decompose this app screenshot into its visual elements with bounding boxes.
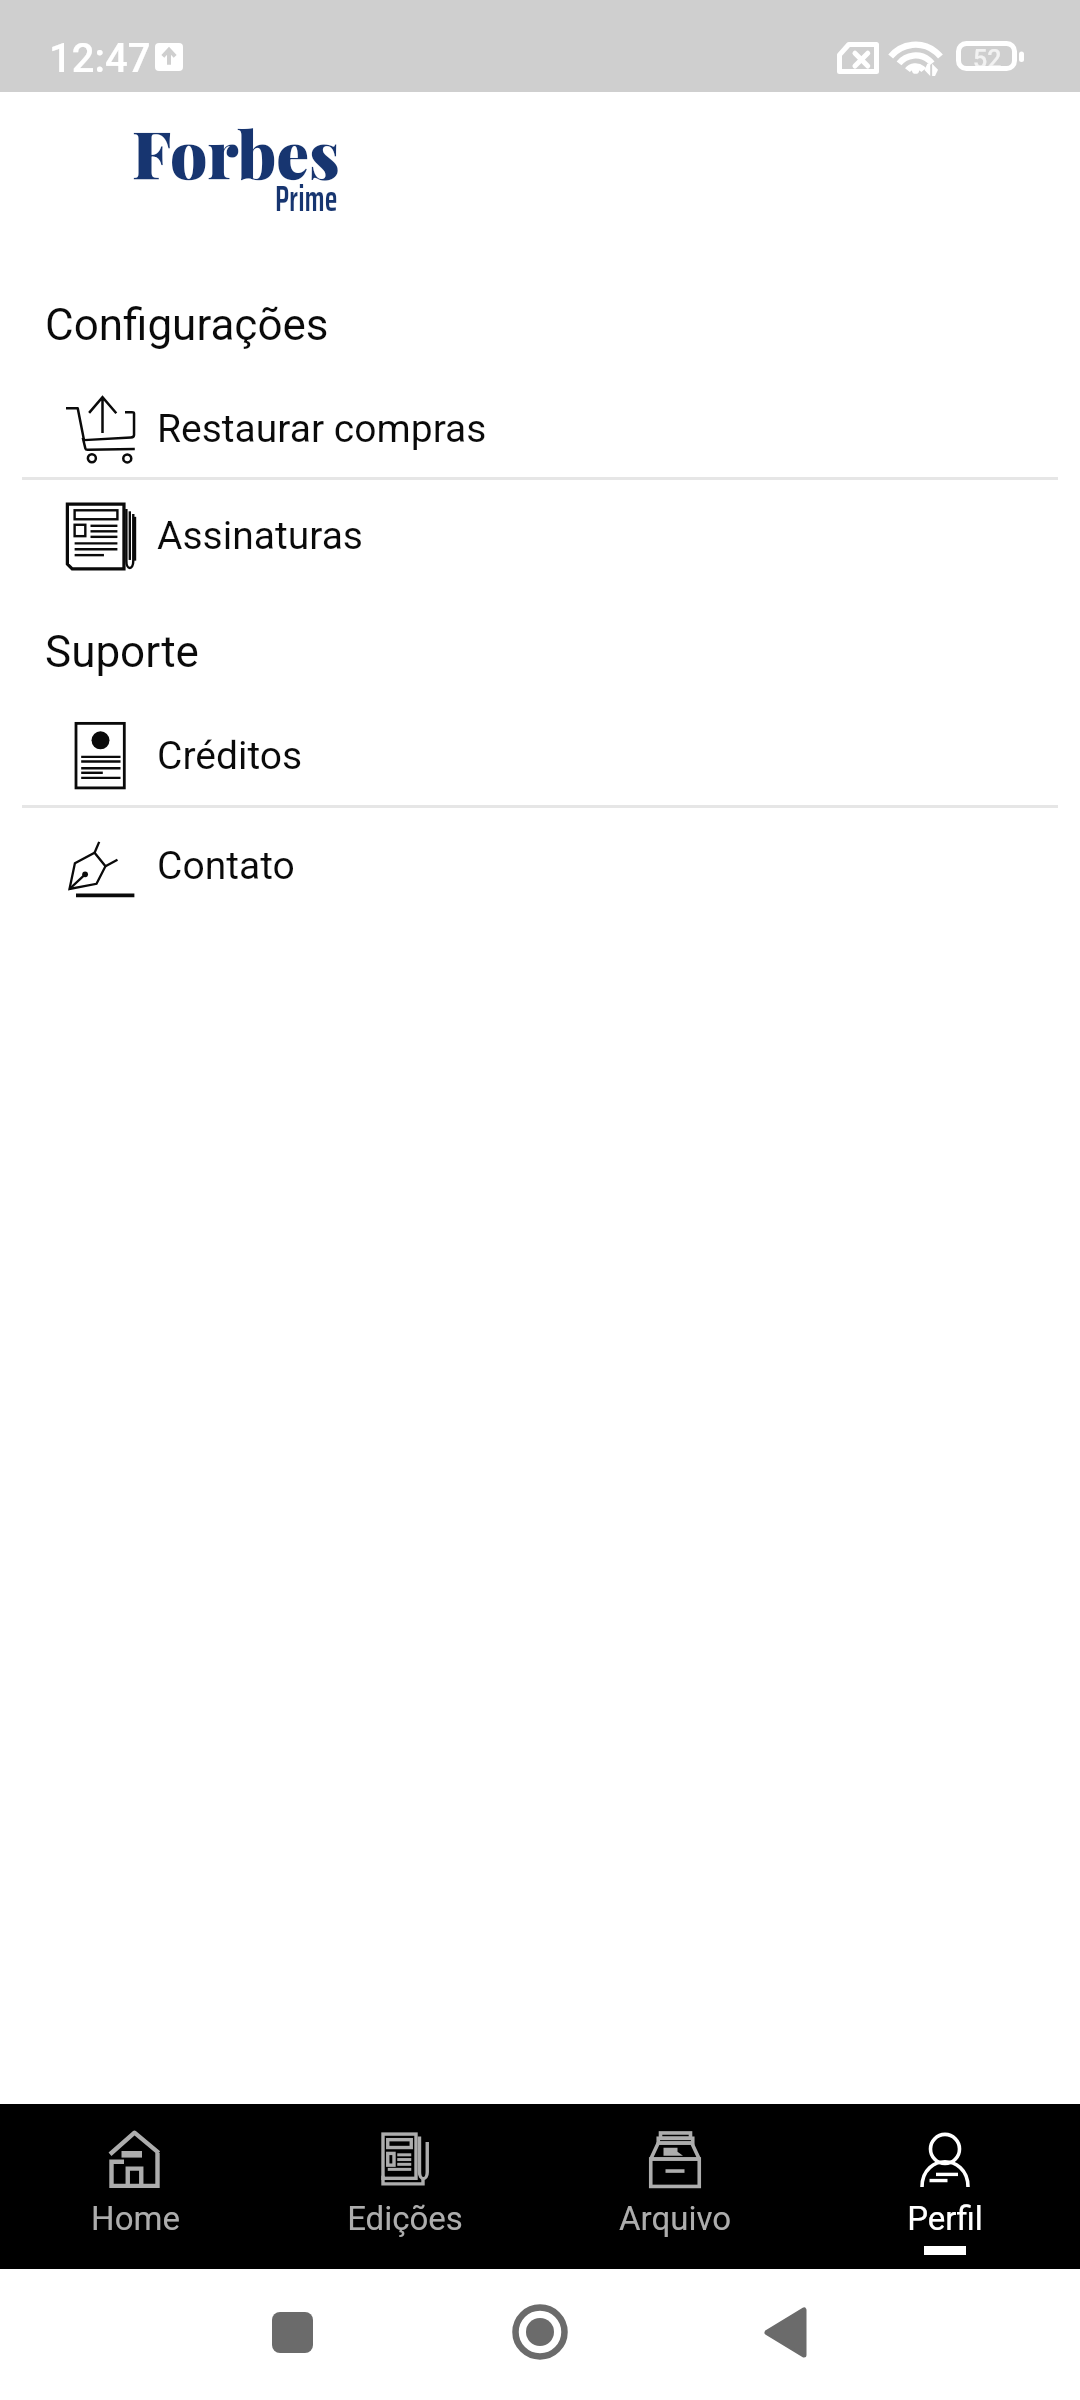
staticText: 52 <box>973 45 1002 74</box>
staticText: Créditos <box>157 733 303 779</box>
button[interactable]: Restaurar compras <box>0 379 1080 479</box>
button[interactable]: Edições <box>270 2104 540 2269</box>
staticText: Arquivo <box>619 2199 731 2238</box>
button[interactable]: Créditos <box>0 706 1080 806</box>
button[interactable]: Arquivo <box>540 2104 810 2269</box>
button[interactable]: Assinaturas <box>0 486 1080 586</box>
button[interactable]: Home <box>0 2104 270 2269</box>
staticText: Restaurar compras <box>157 406 487 452</box>
staticText: Forbes <box>132 109 340 196</box>
button[interactable]: Contato <box>0 816 1080 916</box>
staticText: Assinaturas <box>157 513 363 559</box>
staticText: Home <box>91 2199 180 2238</box>
staticText: Edições <box>347 2199 463 2238</box>
staticText: Configurações <box>45 299 329 351</box>
staticText: Prime <box>275 169 338 227</box>
button[interactable]: Back <box>737 2284 833 2380</box>
button[interactable]: Home <box>492 2284 588 2380</box>
button[interactable]: Perfil <box>810 2104 1080 2269</box>
staticText: Perfil <box>907 2199 983 2238</box>
button[interactable]: Recent apps <box>244 2284 340 2380</box>
staticText: 12:47 <box>49 35 151 82</box>
staticText: Contato <box>157 843 295 889</box>
staticText: Suporte <box>45 626 199 678</box>
